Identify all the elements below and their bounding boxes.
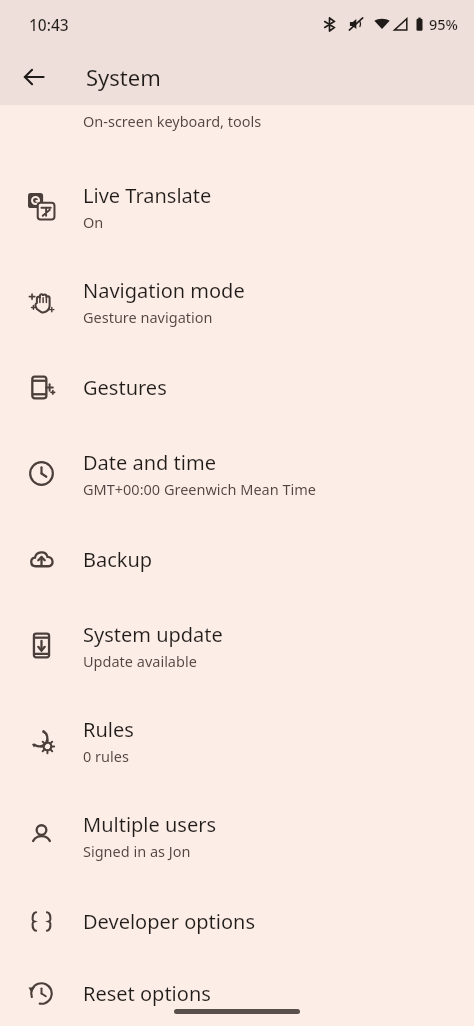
button[interactable]: Navigation mode [0, 254, 474, 349]
staticText: Multiple users [83, 811, 217, 838]
staticText: GMT+00:00 Greenwich Mean Time [83, 479, 317, 499]
staticText: Signed in as Jon [83, 841, 191, 861]
staticText: 0 rules [83, 746, 129, 766]
button[interactable]: Developer options [0, 883, 474, 960]
staticText: Developer options [83, 908, 256, 935]
staticText: 10:43 [29, 14, 69, 35]
staticText: Date and time [83, 449, 216, 476]
staticText: On-screen keyboard, tools [83, 111, 262, 131]
button[interactable]: Back [10, 53, 58, 101]
button[interactable]: Gestures [0, 349, 474, 426]
button[interactable]: Live Translate [0, 159, 474, 254]
staticText: System update [83, 621, 223, 648]
button[interactable]: Reset options [0, 960, 474, 1026]
button[interactable]: Multiple users [0, 788, 474, 883]
staticText: On [83, 212, 104, 232]
button[interactable]: Rules [0, 693, 474, 788]
button[interactable]: Backup [0, 521, 474, 598]
staticText: System [86, 62, 161, 92]
staticText: Reset options [83, 980, 211, 1007]
staticText: Gestures [83, 374, 167, 401]
staticText: Live Translate [83, 182, 212, 209]
staticText: Gesture navigation [83, 307, 213, 327]
staticText: Navigation mode [83, 277, 245, 304]
button[interactable]: Date and time [0, 426, 474, 521]
button[interactable]: System update [0, 598, 474, 693]
staticText: Update available [83, 651, 197, 671]
staticText: 95% [429, 14, 458, 34]
staticText: Rules [83, 716, 134, 743]
staticText: Backup [83, 546, 153, 573]
